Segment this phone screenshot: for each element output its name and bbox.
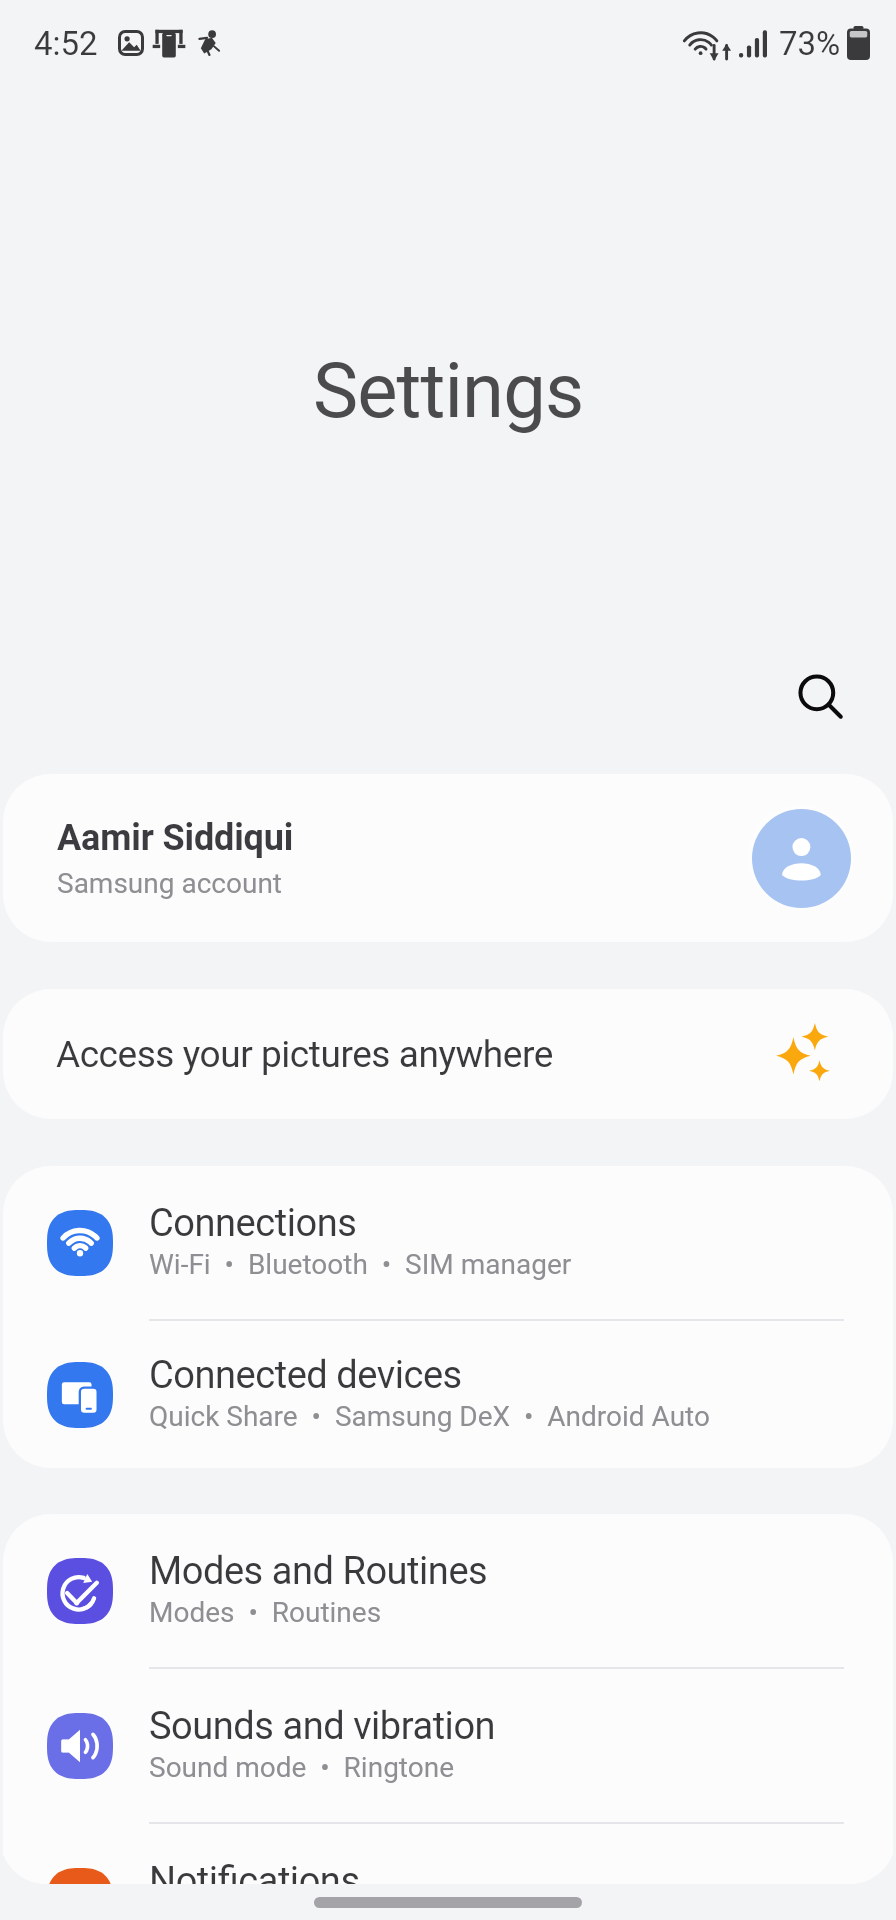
button[interactable]: Modes and Routines (3, 1514, 893, 1667)
staticText: Quick Share • Samsung DeX • Android Auto (149, 1400, 710, 1433)
staticText: Connected devices (149, 1353, 462, 1398)
staticText: Aamir Siddiqui (57, 817, 294, 859)
staticText: Samsung account (57, 867, 282, 900)
button[interactable]: Access your pictures anywhere (3, 989, 893, 1119)
staticText: Settings (313, 346, 584, 435)
button[interactable]: Notifications (3, 1824, 893, 1920)
staticText: Sounds and vibration (149, 1704, 496, 1749)
button[interactable]: Sounds and vibration (3, 1669, 893, 1822)
button[interactable]: Aamir Siddiqui (3, 774, 893, 942)
staticText: Notifications (149, 1859, 360, 1904)
staticText: Modes and Routines (149, 1549, 488, 1594)
button[interactable]: Connections (3, 1166, 893, 1319)
staticText: Wi-Fi • Bluetooth • SIM manager (149, 1248, 572, 1281)
staticText: Connections (149, 1201, 357, 1246)
staticText: Pop-up style • App notifications (149, 1906, 552, 1920)
staticText: Sound mode • Ringtone (149, 1751, 455, 1784)
staticText: Modes • Routines (149, 1596, 382, 1629)
button[interactable]: Search (773, 650, 869, 746)
staticText: 73% (779, 24, 841, 63)
staticText: Access your pictures anywhere (56, 1033, 776, 1076)
button[interactable]: Connected devices (3, 1321, 893, 1468)
staticText: 4:52 (34, 24, 98, 63)
